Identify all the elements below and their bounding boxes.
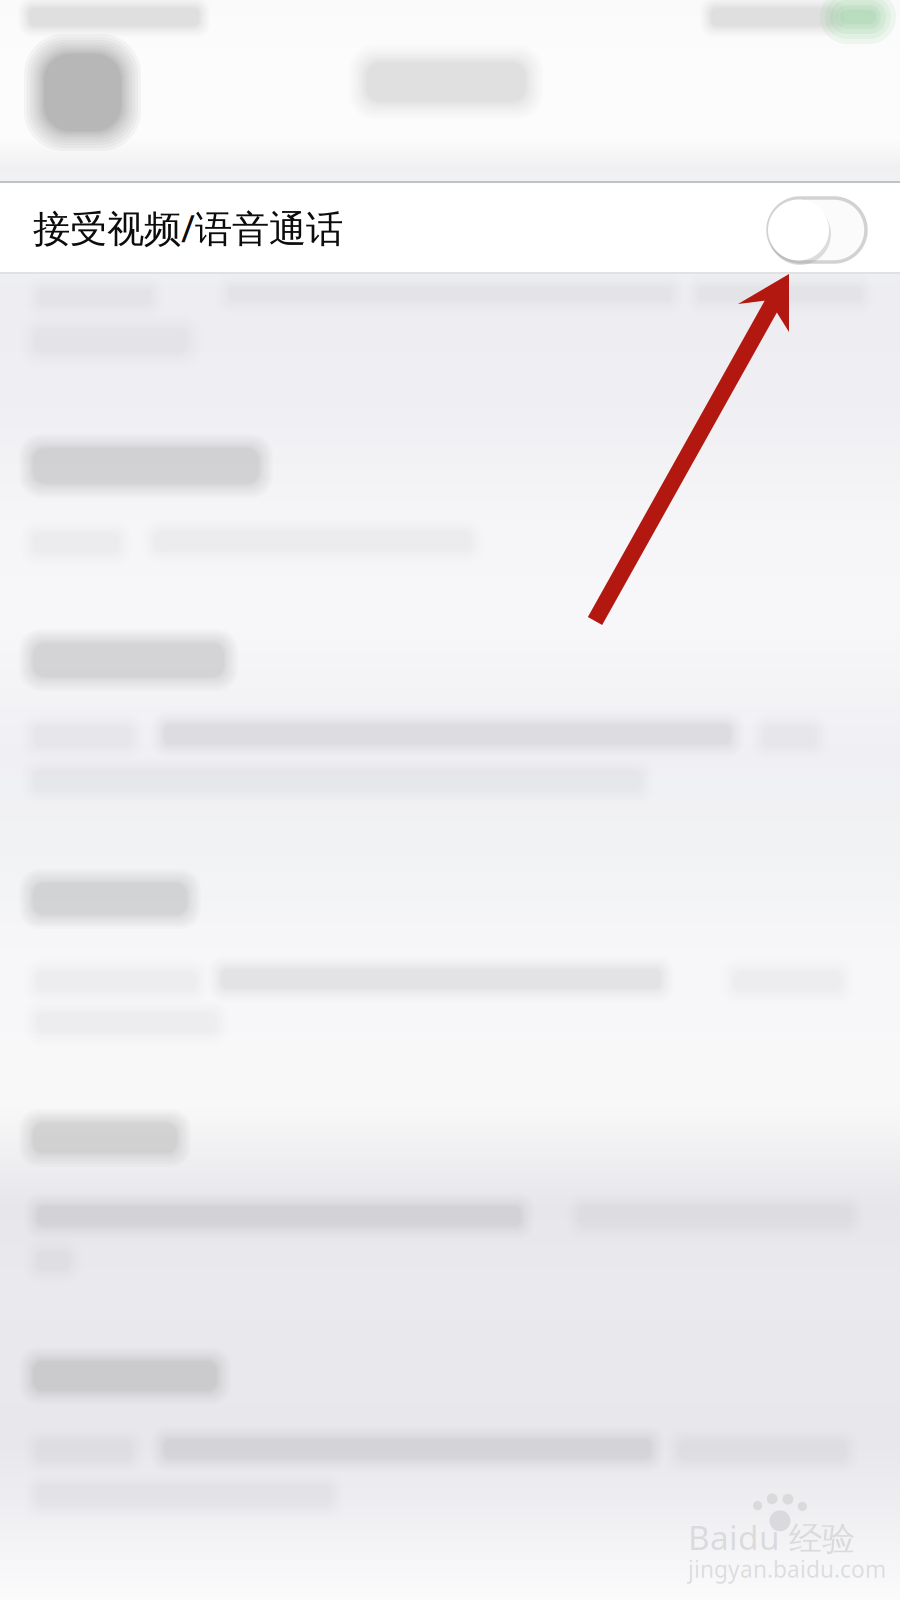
staticText: 接受视频/语音通话 [33, 203, 343, 253]
staticText: jingyan.baidu.com [688, 1554, 886, 1584]
button[interactable]: 接受视频/语音通话 [0, 179, 900, 272]
staticText: Baidu 经验 [688, 1515, 855, 1559]
